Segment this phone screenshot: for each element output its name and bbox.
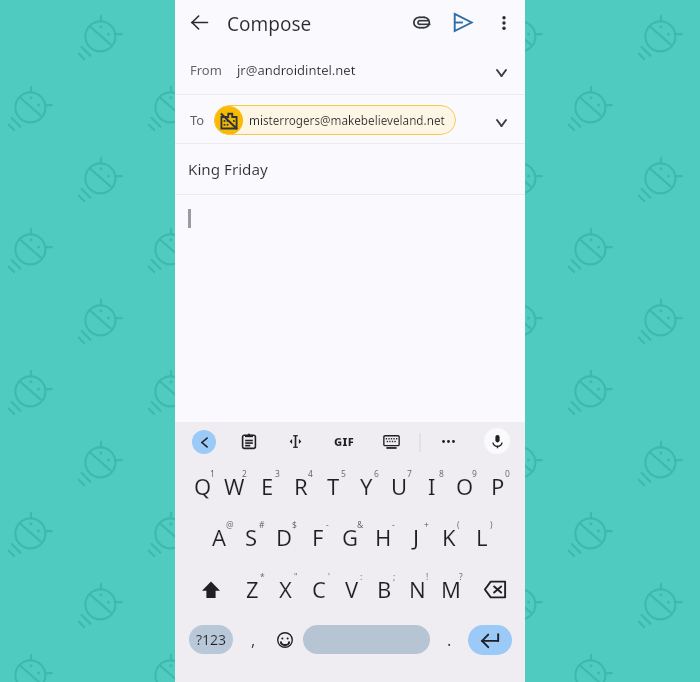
staticText: O bbox=[456, 471, 474, 501]
button[interactable]: Send bbox=[447, 7, 478, 38]
button[interactable]: Keyboard settings bbox=[379, 429, 403, 453]
staticText: U bbox=[391, 471, 408, 501]
button[interactable]: V bbox=[335, 564, 368, 614]
button[interactable]: S bbox=[235, 512, 268, 562]
button[interactable]: Q bbox=[186, 461, 219, 511]
staticText: Compose bbox=[227, 11, 312, 37]
button[interactable]: N bbox=[401, 564, 434, 614]
staticText: 9 bbox=[472, 468, 477, 480]
staticText: - bbox=[392, 519, 395, 531]
staticText: I bbox=[428, 471, 436, 501]
button[interactable]: D bbox=[268, 512, 301, 562]
staticText: N bbox=[409, 574, 426, 604]
staticText: D bbox=[276, 522, 293, 552]
button[interactable]: Expand bbox=[481, 50, 521, 90]
button[interactable]: Voice input bbox=[484, 428, 510, 454]
staticText: - bbox=[326, 519, 329, 531]
button[interactable]: More options bbox=[488, 7, 519, 38]
staticText: To bbox=[190, 111, 205, 129]
button[interactable]: Clipboard bbox=[237, 429, 261, 453]
button[interactable]: G bbox=[334, 512, 367, 562]
button[interactable]: Previous bbox=[192, 430, 216, 454]
staticText: : bbox=[360, 571, 363, 583]
button[interactable]: T bbox=[317, 461, 350, 511]
staticText: ?123 bbox=[196, 630, 227, 649]
staticText: 0 bbox=[505, 468, 510, 480]
staticText: W bbox=[224, 471, 245, 501]
button[interactable]: L bbox=[465, 512, 498, 562]
button[interactable]: Z bbox=[236, 564, 269, 614]
button[interactable]: Backspace bbox=[473, 564, 517, 614]
button[interactable]: Attach file bbox=[407, 7, 438, 38]
staticText: From bbox=[190, 61, 222, 79]
staticText: K bbox=[442, 522, 456, 552]
button[interactable]: X bbox=[269, 564, 302, 614]
button[interactable]: Expand bbox=[481, 100, 521, 140]
staticText: Z bbox=[246, 574, 259, 604]
button[interactable]: ?123 bbox=[189, 625, 233, 654]
button[interactable]: P bbox=[481, 461, 514, 511]
button[interactable]: K bbox=[432, 512, 465, 562]
button[interactable]: R bbox=[284, 461, 317, 511]
button[interactable]: GIF bbox=[332, 429, 356, 453]
button[interactable]: misterrogers@makebelieveland.net bbox=[214, 105, 456, 135]
staticText: " bbox=[294, 571, 298, 583]
staticText: R bbox=[294, 471, 308, 501]
staticText: 8 bbox=[439, 468, 444, 480]
button[interactable]: E bbox=[251, 461, 284, 511]
button[interactable]: H bbox=[367, 512, 400, 562]
button[interactable]: B bbox=[368, 564, 401, 614]
button[interactable]: Y bbox=[350, 461, 383, 511]
button[interactable]: More bbox=[436, 429, 460, 453]
staticText: 4 bbox=[308, 468, 313, 480]
button[interactable]: U bbox=[383, 461, 416, 511]
staticText: 6 bbox=[374, 468, 379, 480]
staticText: C bbox=[312, 574, 326, 604]
staticText: H bbox=[375, 522, 392, 552]
staticText: GIF bbox=[334, 434, 355, 449]
staticText: ; bbox=[393, 571, 396, 583]
staticText: , bbox=[251, 629, 256, 651]
staticText: . bbox=[447, 629, 452, 651]
staticText: ( bbox=[457, 519, 460, 531]
staticText: 2 bbox=[242, 468, 247, 480]
button[interactable]: M bbox=[434, 564, 467, 614]
button[interactable]: Shift bbox=[193, 564, 229, 614]
button[interactable]: Space bbox=[303, 625, 430, 654]
button[interactable]: . bbox=[436, 627, 462, 653]
button[interactable]: I bbox=[415, 461, 448, 511]
staticText: T bbox=[327, 471, 340, 501]
staticText: P bbox=[491, 471, 505, 501]
button[interactable]: Enter bbox=[468, 625, 512, 655]
button[interactable]: W bbox=[218, 461, 251, 511]
staticText: B bbox=[377, 574, 392, 604]
button[interactable]: O bbox=[448, 461, 481, 511]
staticText: G bbox=[342, 522, 359, 552]
staticText: 3 bbox=[275, 468, 280, 480]
staticText: # bbox=[259, 519, 265, 531]
button[interactable]: Text editing bbox=[283, 429, 307, 453]
staticText: misterrogers@makebelieveland.net bbox=[249, 112, 445, 128]
staticText: M bbox=[441, 574, 461, 604]
button[interactable]: A bbox=[203, 512, 236, 562]
button[interactable]: Emoji bbox=[272, 627, 298, 653]
staticText: S bbox=[245, 522, 258, 552]
staticText: & bbox=[357, 519, 364, 531]
staticText: L bbox=[476, 522, 488, 552]
staticText: jr@androidintel.net bbox=[237, 61, 356, 79]
staticText: 5 bbox=[341, 468, 346, 480]
staticText: King Friday bbox=[188, 159, 268, 180]
staticText: J bbox=[413, 522, 420, 552]
staticText: $ bbox=[292, 519, 297, 531]
button[interactable]: F bbox=[301, 512, 334, 562]
staticText: @ bbox=[226, 519, 234, 531]
button[interactable]: C bbox=[302, 564, 335, 614]
button[interactable]: , bbox=[240, 627, 266, 653]
staticText: V bbox=[345, 574, 359, 604]
button[interactable]: J bbox=[400, 512, 433, 562]
button[interactable]: Back bbox=[184, 7, 215, 38]
staticText: ! bbox=[426, 571, 429, 583]
staticText: + bbox=[424, 519, 429, 531]
staticText: A bbox=[212, 522, 227, 552]
